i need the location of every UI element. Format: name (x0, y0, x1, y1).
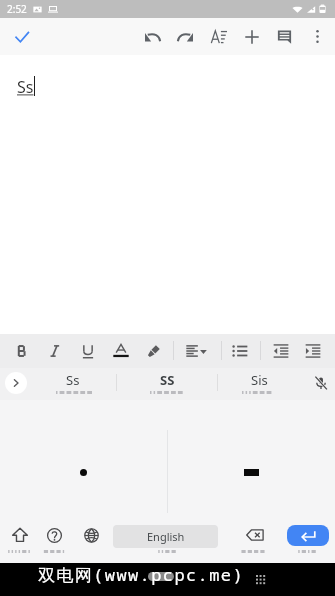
button[interactable]: Sis (217, 368, 300, 400)
button[interactable]: More options (301, 18, 334, 55)
button[interactable]: SS (116, 368, 217, 400)
staticText: English (147, 529, 185, 544)
button[interactable] (178, 334, 210, 368)
button[interactable]: Text formatting (202, 18, 235, 55)
button[interactable]: English (113, 525, 218, 548)
button[interactable]: Comments (268, 18, 301, 55)
button[interactable]: Dot (0, 400, 167, 519)
button[interactable]: Change language (75, 519, 107, 551)
button[interactable]: Redo (169, 18, 202, 55)
button[interactable] (224, 334, 256, 368)
staticText: Sis (251, 371, 268, 389)
button[interactable]: Shift (4, 519, 36, 551)
button[interactable]: Ss (30, 368, 116, 400)
button[interactable]: Show more (5, 372, 27, 394)
button[interactable] (6, 334, 38, 368)
staticText: 2:52 (7, 2, 27, 16)
button[interactable]: Enter (287, 525, 329, 546)
button[interactable]: Insert (235, 18, 268, 55)
button[interactable] (265, 334, 297, 368)
button[interactable] (72, 334, 104, 368)
button[interactable]: Home (148, 572, 174, 581)
button[interactable]: Voice input disabled (306, 368, 335, 400)
button[interactable] (105, 334, 137, 368)
staticText: 双电网(www.pcpc.me) (38, 563, 244, 586)
staticText: Ss (66, 371, 80, 389)
button[interactable] (138, 334, 170, 368)
button[interactable] (39, 334, 71, 368)
staticText: Ss (17, 76, 34, 98)
button[interactable]: Backspace (239, 519, 271, 551)
staticText: SS (160, 371, 175, 389)
button[interactable]: Undo (136, 18, 169, 55)
button[interactable]: Help (38, 519, 70, 551)
button[interactable]: Dash (167, 400, 335, 519)
button[interactable] (297, 334, 329, 368)
button[interactable]: Done (5, 20, 39, 54)
